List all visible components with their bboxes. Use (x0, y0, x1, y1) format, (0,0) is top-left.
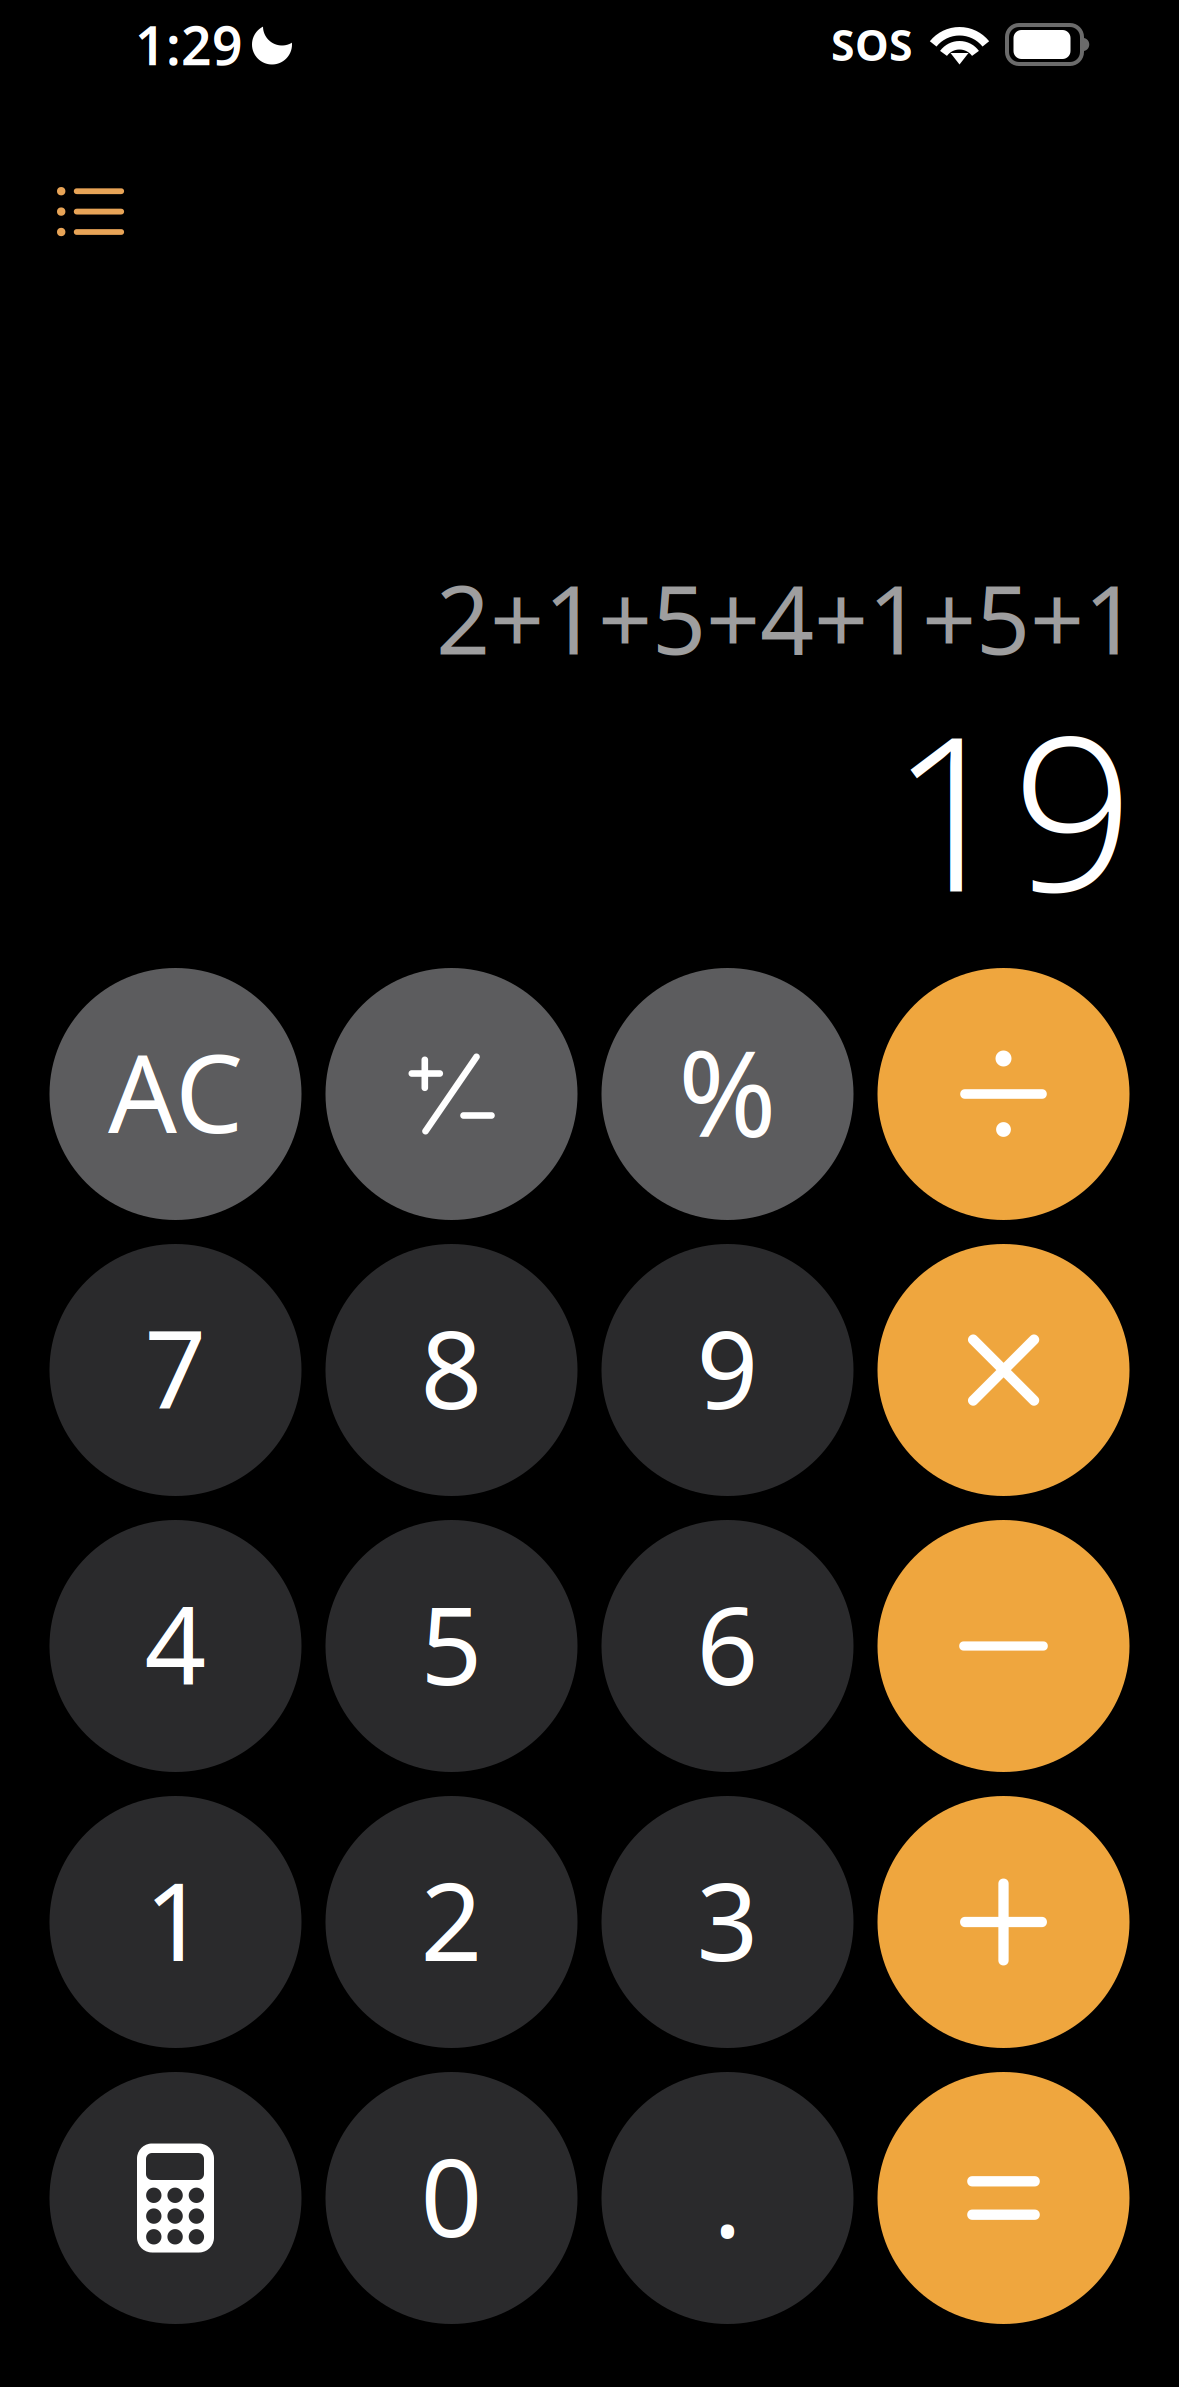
staticText: 1:29 (135, 9, 243, 80)
staticText: 1 (144, 1847, 206, 1991)
button[interactable]: Multiply (877, 1244, 1129, 1496)
staticText: 9 (696, 1295, 758, 1439)
button[interactable]: 9 (601, 1244, 853, 1496)
button[interactable]: Plus (877, 1796, 1129, 2048)
button[interactable]: 4 (49, 1520, 301, 1772)
button[interactable]: 0 (325, 2072, 577, 2324)
button[interactable]: Equals (877, 2072, 1129, 2324)
button[interactable]: Divide (877, 968, 1129, 1220)
button[interactable]: Minus (877, 1520, 1129, 1772)
button[interactable]: 5 (325, 1520, 577, 1772)
staticText: 2 (420, 1847, 482, 1991)
button[interactable]: A C (49, 968, 301, 1220)
button[interactable]: Calculator mode (49, 2072, 301, 2324)
staticText: 5 (420, 1571, 482, 1715)
staticText: 0 (420, 2123, 482, 2267)
button[interactable]: 6 (601, 1520, 853, 1772)
button[interactable]: History (35, 155, 146, 269)
button[interactable]: 8 (325, 1244, 577, 1496)
button[interactable]: 7 (49, 1244, 301, 1496)
staticText: 8 (420, 1295, 482, 1439)
button[interactable]: 2 (325, 1796, 577, 2048)
button[interactable]: 3 (601, 1796, 853, 2048)
button[interactable]: Decimal point (601, 2072, 853, 2324)
staticText: . (713, 2123, 742, 2267)
staticText: 4 (144, 1571, 206, 1715)
staticText: % (678, 1012, 777, 1170)
button[interactable]: 1 (49, 1796, 301, 2048)
staticText: 6 (696, 1571, 758, 1715)
staticText: 7 (144, 1295, 206, 1439)
button[interactable]: Percent (601, 968, 853, 1220)
staticText: SOS (831, 16, 913, 73)
staticText: 3 (696, 1847, 758, 1991)
staticText: 2+1+5+4+1+5+1 (436, 555, 1138, 681)
button[interactable]: Plus Minus (325, 968, 577, 1220)
staticText: 19 (890, 667, 1134, 950)
staticText: AC (108, 1019, 243, 1163)
